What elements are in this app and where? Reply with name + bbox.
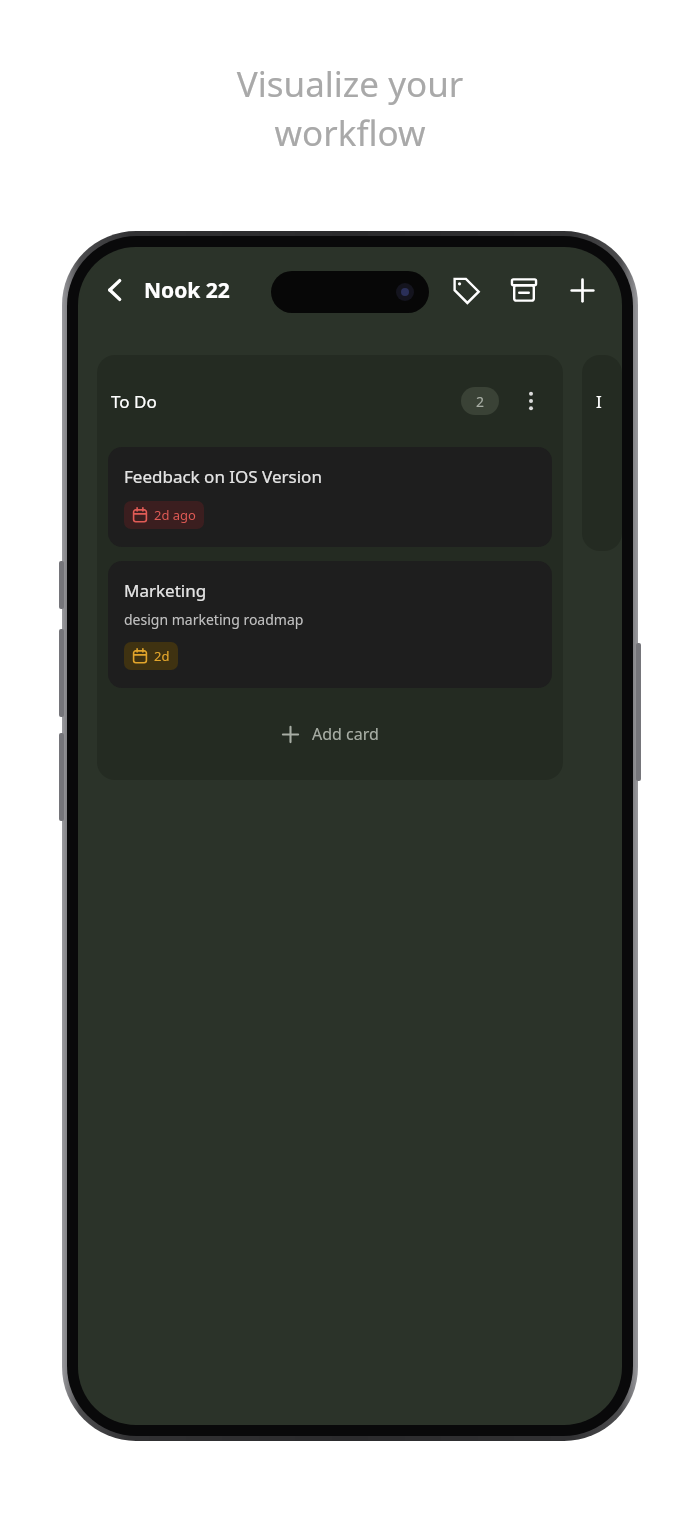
staticText: Visualize your workflow <box>0 60 700 157</box>
staticText: 2 <box>476 392 485 411</box>
staticText: Nook 22 <box>144 276 230 305</box>
staticText: Marketing <box>124 579 207 602</box>
button[interactable]: Marketing <box>108 561 552 688</box>
button[interactable]: Add card <box>108 688 552 780</box>
staticText: To Do <box>111 390 157 413</box>
staticText: 2d ago <box>154 506 196 524</box>
staticText: Add card <box>312 723 379 745</box>
button[interactable]: Feedback on IOS Version <box>108 447 552 547</box>
staticText: In Progress <box>596 390 608 413</box>
staticText: design marketing roadmap <box>124 610 304 629</box>
button[interactable]: List options <box>513 383 549 419</box>
staticText: 2d <box>154 647 170 665</box>
button[interactable]: Back <box>92 267 138 313</box>
button[interactable]: Labels <box>444 268 488 312</box>
button[interactable]: Archive <box>502 268 546 312</box>
staticText: Feedback on IOS Version <box>124 465 322 488</box>
button[interactable]: Add <box>560 268 604 312</box>
